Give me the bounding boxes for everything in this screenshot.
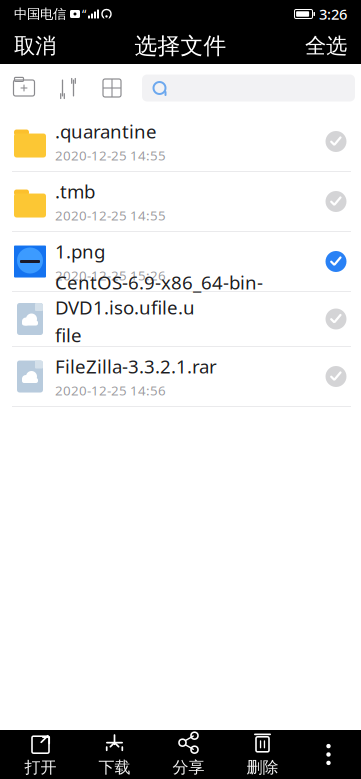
button[interactable]: 全选: [291, 28, 361, 64]
staticText: 全选: [305, 33, 347, 59]
staticText: 3:26: [319, 4, 347, 24]
staticText: 取消: [14, 33, 56, 59]
staticText: .quarantine: [55, 119, 157, 144]
staticText: 中国电信: [14, 6, 66, 22]
staticText: 2020-12-25 15:26: [55, 266, 166, 284]
staticText: 2020-12-25 14:56: [55, 381, 166, 399]
button[interactable]: 切换视图: [90, 66, 134, 110]
staticText: CentOS-6.9-x86_64-bin-DVD1.iso.ufile.u: [55, 270, 263, 320]
staticText: 2020-12-25 14:55: [55, 146, 166, 164]
button[interactable]: FileZilla-3.3.2.1.rar: [0, 347, 361, 407]
button[interactable]: 1.png: [0, 232, 361, 292]
staticText: 1.png: [55, 239, 105, 264]
staticText: FileZilla-3.3.2.1.rar: [55, 354, 217, 379]
button[interactable]: 删除: [229, 730, 295, 779]
staticText: 选择文件: [134, 32, 226, 60]
staticText: 打开: [24, 758, 56, 777]
button[interactable]: 更多: [303, 730, 353, 779]
button[interactable]: 搜索: [134, 74, 361, 101]
staticText: .tmb: [55, 179, 95, 204]
button[interactable]: CentOS-6.9-x86_64-bin-DVD1.iso.ufile.u: [0, 292, 361, 347]
staticText: 2020-12-25 14:55: [55, 206, 166, 224]
button[interactable]: 分享: [155, 730, 221, 779]
button[interactable]: .quarantine: [0, 112, 361, 172]
staticText: 2020-12-25 15:07: [55, 350, 166, 368]
button[interactable]: 打开: [7, 730, 73, 779]
staticText: file: [55, 322, 82, 347]
button[interactable]: 取消: [0, 28, 70, 64]
staticText: 分享: [172, 758, 204, 777]
staticText: 删除: [246, 758, 278, 777]
button[interactable]: 新建文件夹: [2, 66, 46, 110]
button[interactable]: 排序: [46, 66, 90, 110]
button[interactable]: .tmb: [0, 172, 361, 232]
staticText: “: [82, 6, 86, 22]
button[interactable]: 下载: [81, 730, 147, 779]
staticText: 下载: [98, 758, 130, 777]
